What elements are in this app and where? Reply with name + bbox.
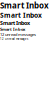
staticText: Smart Inbox	[0, 27, 25, 32]
staticText: Smart Inbox	[0, 0, 49, 11]
staticText: 12 unread messages	[0, 37, 28, 41]
staticText: 12 unread messages	[0, 32, 36, 37]
staticText: Smart Inbox	[0, 19, 30, 27]
staticText: Smart Inbox	[0, 11, 42, 19]
